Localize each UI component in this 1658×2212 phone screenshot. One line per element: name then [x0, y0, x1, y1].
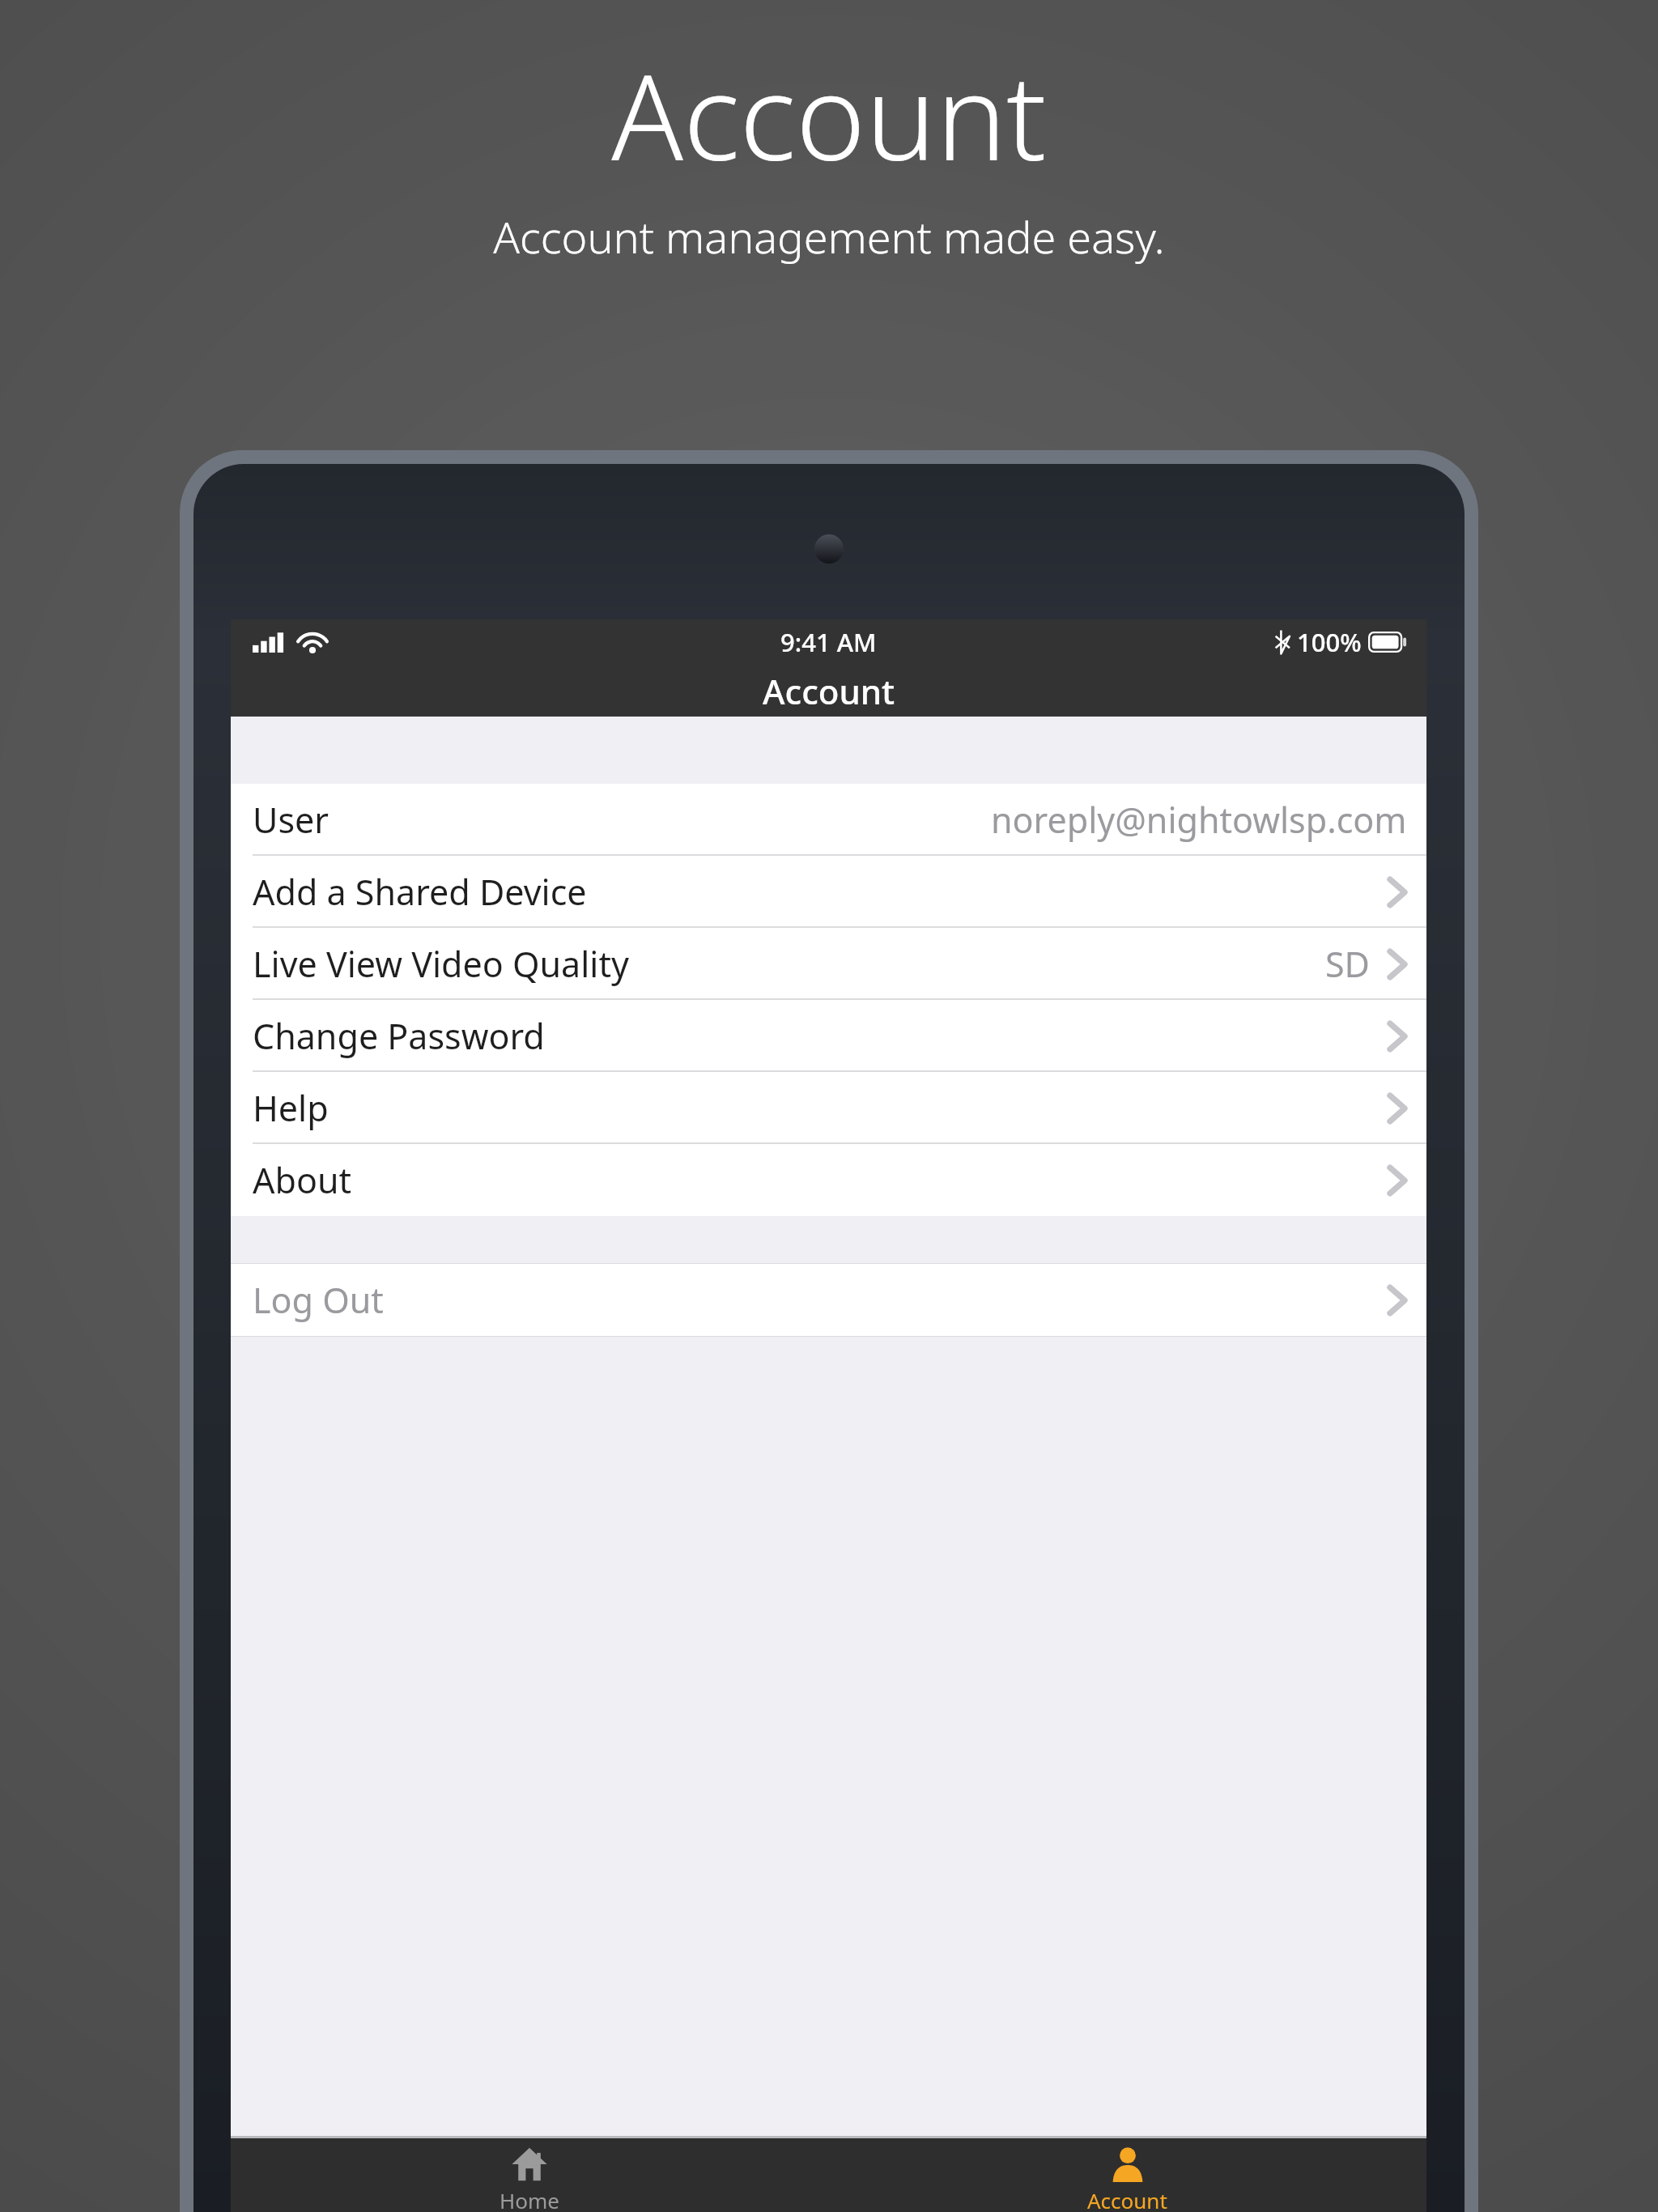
- staticText: Account: [611, 34, 1047, 195]
- staticText: User: [253, 796, 329, 844]
- button[interactable]: Change Password: [231, 1000, 1426, 1072]
- staticText: SD: [1325, 940, 1370, 988]
- button[interactable]: About: [231, 1144, 1426, 1216]
- staticText: Account: [763, 668, 895, 714]
- button[interactable]: Live View Video Quality: [231, 928, 1426, 1000]
- button[interactable]: Account: [828, 2138, 1426, 2212]
- staticText: Account management made easy.: [493, 206, 1165, 266]
- button[interactable]: Home: [231, 2138, 828, 2212]
- staticText: noreply@nightowlsp.com: [991, 796, 1407, 844]
- staticText: 100%: [1297, 625, 1362, 659]
- staticText: Log Out: [253, 1276, 384, 1324]
- button[interactable]: User: [231, 784, 1426, 856]
- staticText: About: [253, 1156, 352, 1204]
- staticText: Add a Shared Device: [253, 868, 587, 916]
- button[interactable]: Help: [231, 1072, 1426, 1144]
- staticText: 9:41 AM: [780, 625, 877, 659]
- staticText: Change Password: [253, 1012, 545, 1060]
- staticText: Home: [500, 2186, 559, 2212]
- staticText: Account: [1087, 2186, 1167, 2212]
- staticText: Live View Video Quality: [253, 940, 629, 988]
- button[interactable]: Log Out: [231, 1264, 1426, 1336]
- staticText: Help: [253, 1084, 329, 1132]
- button[interactable]: Add a Shared Device: [231, 856, 1426, 928]
